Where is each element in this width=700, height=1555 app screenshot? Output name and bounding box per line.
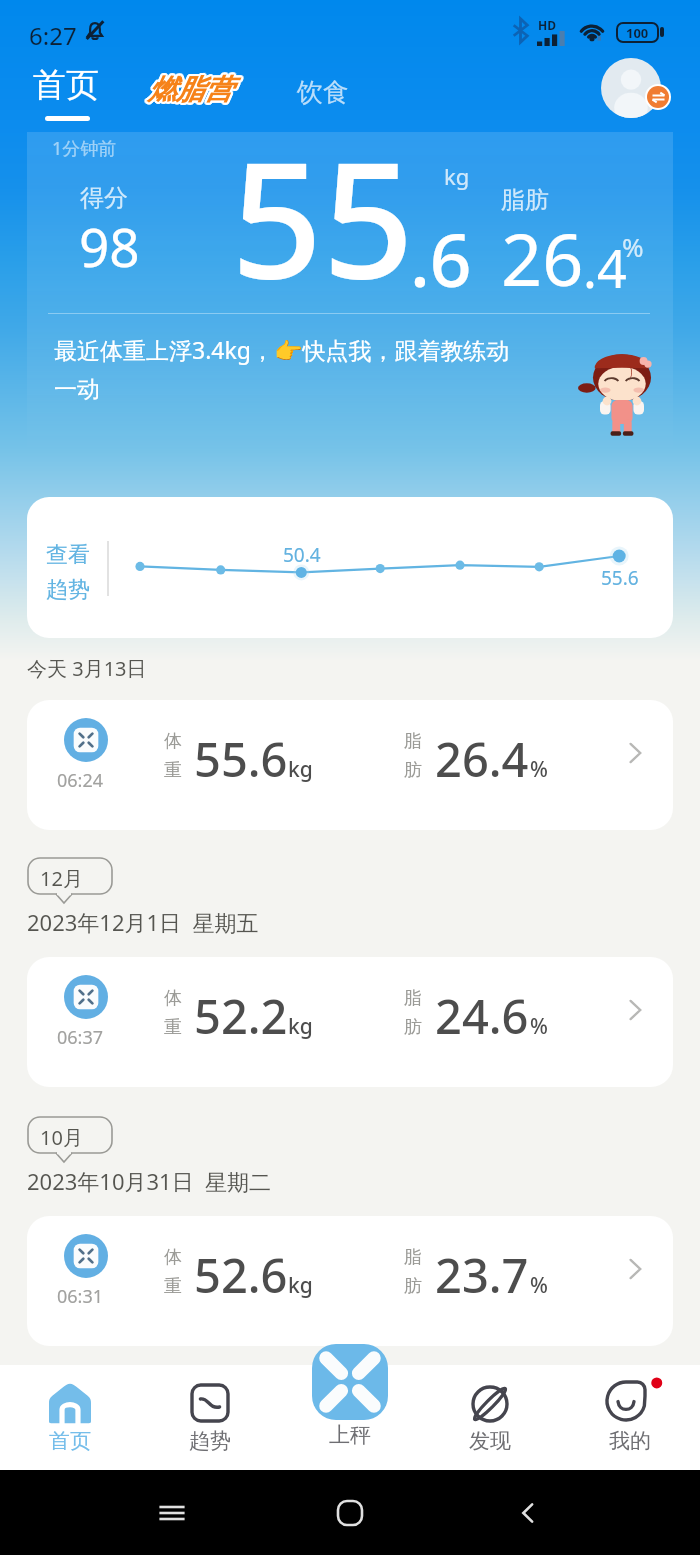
staticText: 55 — [231, 107, 415, 325]
button[interactable]: 首页 — [0, 1365, 140, 1470]
staticText: 燃脂营 — [148, 74, 232, 109]
staticText: 燃脂营 — [149, 71, 233, 106]
staticText: kg — [288, 755, 313, 784]
button[interactable]: 发现 — [420, 1365, 560, 1470]
staticText: 饮食 — [297, 76, 349, 109]
staticText: 肪 — [404, 759, 422, 782]
staticText: kg — [444, 161, 470, 191]
staticText: 重 — [164, 759, 182, 782]
staticText: 今天 3月13日 — [27, 655, 147, 682]
staticText: 得分 — [80, 183, 128, 213]
staticText: 最近体重上浮3.4kg，👉快点我，跟着教练动 — [54, 334, 510, 365]
staticText: 燃脂营 — [147, 74, 231, 109]
staticText: % — [622, 229, 644, 264]
staticText: 50.4 — [283, 542, 321, 568]
staticText: 6:27 — [29, 19, 77, 52]
staticText: 体 — [164, 987, 182, 1010]
staticText: 燃脂营 — [150, 73, 234, 108]
staticText: 发现 — [469, 1428, 511, 1454]
button[interactable]: 查看 — [27, 497, 673, 638]
button[interactable]: Recent apps — [150, 1491, 194, 1535]
staticText: 100 — [626, 24, 649, 41]
staticText: 首页 — [49, 1428, 91, 1454]
staticText: 26 — [501, 209, 584, 307]
staticText: 查看 — [46, 541, 90, 569]
staticText: 06:24 — [57, 768, 104, 793]
staticText: 10月 — [40, 1124, 83, 1151]
staticText: 脂 — [404, 1246, 422, 1269]
staticText: 燃脂营 — [148, 70, 232, 105]
button[interactable]: 上秤 — [312, 1365, 388, 1467]
staticText: 燃脂营 — [150, 71, 234, 106]
staticText: 1分钟前 — [52, 136, 117, 161]
staticText: .6 — [410, 209, 472, 308]
staticText: 燃脂营 — [148, 72, 232, 107]
staticText: 上秤 — [329, 1422, 371, 1448]
staticText: 55.6 — [601, 565, 639, 591]
button[interactable]: Home — [328, 1491, 372, 1535]
staticText: 体 — [164, 730, 182, 753]
staticText: .4 — [583, 232, 627, 303]
staticText: 肪 — [404, 1275, 422, 1298]
staticText: % — [530, 755, 548, 784]
staticText: 24.6 — [435, 984, 529, 1048]
staticText: 燃脂营 — [149, 74, 233, 109]
staticText: 06:37 — [57, 1025, 104, 1050]
staticText: 燃脂营 — [146, 72, 230, 107]
staticText: 23.7 — [435, 1243, 529, 1307]
staticText: 燃脂营 — [148, 73, 232, 108]
staticText: 12月 — [40, 865, 83, 892]
staticText: 燃脂营 — [149, 72, 233, 107]
staticText: 脂肪 — [501, 185, 549, 215]
staticText: 燃脂营 — [147, 73, 231, 108]
staticText: kg — [288, 1271, 313, 1300]
staticText: 重 — [164, 1016, 182, 1039]
staticText: 趋势 — [189, 1428, 231, 1454]
staticText: 26.4 — [435, 727, 529, 791]
button[interactable]: 饮食 — [297, 76, 349, 109]
staticText: 2023年12月1日 星期五 — [27, 907, 259, 937]
staticText: 2023年10月31日 星期二 — [27, 1166, 272, 1196]
button[interactable]: Profile — [601, 58, 661, 118]
staticText: 燃脂营 — [149, 70, 233, 105]
button[interactable]: 06:37 — [27, 957, 673, 1087]
staticText: 一动 — [54, 375, 100, 404]
staticText: 燃脂营 — [147, 71, 231, 106]
staticText: 52.6 — [194, 1243, 288, 1307]
staticText: 体 — [164, 1246, 182, 1269]
button[interactable]: Back — [506, 1491, 550, 1535]
button[interactable]: 燃脂营 — [148, 72, 232, 107]
staticText: % — [530, 1271, 548, 1300]
staticText: 燃脂营 — [146, 71, 230, 106]
button[interactable]: 首页 — [33, 58, 99, 121]
staticText: 燃脂营 — [149, 73, 233, 108]
button[interactable]: 06:24 — [27, 700, 673, 830]
button[interactable]: 06:31 — [27, 1216, 673, 1346]
staticText: 燃脂营 — [146, 73, 230, 108]
staticText: 重 — [164, 1275, 182, 1298]
staticText: 首页 — [33, 64, 99, 106]
staticText: 趋势 — [46, 576, 90, 604]
staticText: 肪 — [404, 1016, 422, 1039]
staticText: 燃脂营 — [147, 70, 231, 105]
staticText: kg — [288, 1012, 313, 1041]
button[interactable]: 我的 — [560, 1365, 700, 1470]
staticText: 燃脂营 — [150, 72, 234, 107]
staticText: 98 — [79, 210, 140, 282]
staticText: 52.2 — [194, 984, 288, 1048]
staticText: 55.6 — [194, 727, 288, 791]
button[interactable]: 趋势 — [140, 1365, 280, 1470]
staticText: 脂 — [404, 730, 422, 753]
staticText: 燃脂营 — [147, 72, 231, 107]
staticText: 脂 — [404, 987, 422, 1010]
staticText: 06:31 — [57, 1284, 104, 1309]
staticText: HD — [538, 17, 556, 33]
staticText: 我的 — [609, 1428, 651, 1454]
staticText: % — [530, 1012, 548, 1041]
staticText: 燃脂营 — [148, 71, 232, 106]
